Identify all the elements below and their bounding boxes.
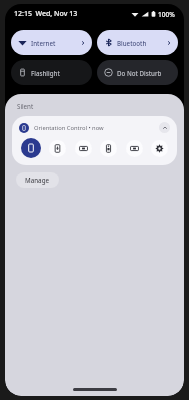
button[interactable]: Flashlight: [11, 60, 92, 85]
button[interactable]: Do Not Disturb: [97, 60, 178, 85]
staticText: Bluetooth: [117, 39, 147, 47]
staticText: 12:15 Wed, Nov 13: [14, 9, 78, 19]
button[interactable]: Settings: [151, 140, 168, 157]
staticText: 100%: [158, 10, 175, 19]
staticText: Flashlight: [31, 69, 60, 77]
button[interactable]: Bluetooth: [97, 30, 178, 55]
button[interactable]: Manage: [16, 172, 59, 188]
staticText: Do Not Disturb: [117, 69, 162, 77]
staticText: Silent: [17, 102, 34, 110]
staticText: Internet: [31, 39, 56, 47]
button[interactable]: Landscape left: [75, 140, 92, 157]
button[interactable]: Portrait lock: [21, 138, 41, 158]
staticText: Manage: [25, 176, 50, 184]
button[interactable]: Orientation Control • now: [12, 116, 177, 165]
button[interactable]: Collapse notification: [159, 122, 170, 133]
staticText: Orientation Control • now: [34, 124, 104, 132]
button[interactable]: Internet: [11, 30, 92, 55]
button[interactable]: Portrait reverse: [100, 140, 117, 157]
button[interactable]: Auto rotate: [49, 140, 66, 157]
button[interactable]: Landscape right: [126, 140, 143, 157]
